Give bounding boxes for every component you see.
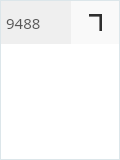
button[interactable]: 9488 (1, 1, 71, 44)
staticText: 9488 (6, 13, 41, 33)
button[interactable]: Seven (71, 1, 119, 44)
